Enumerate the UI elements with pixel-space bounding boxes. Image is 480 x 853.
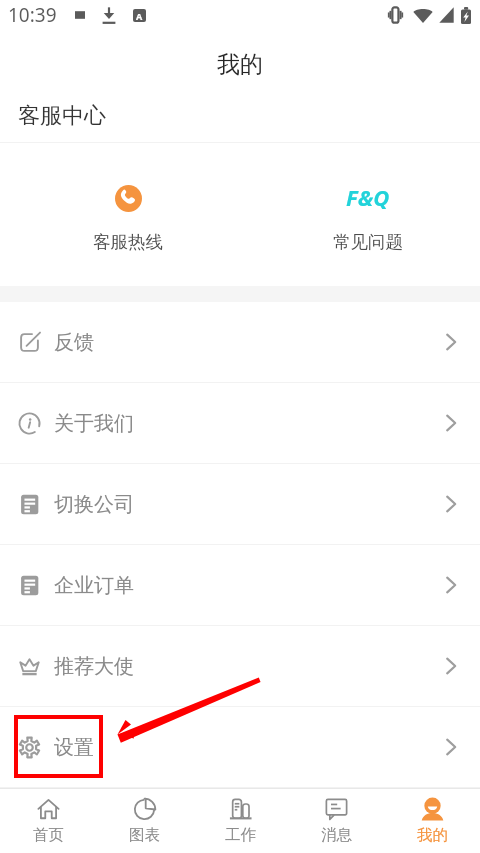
staticText: 关于我们 [54, 411, 134, 436]
staticText: 切换公司 [54, 492, 134, 517]
staticText: 10:39 [8, 2, 57, 28]
button[interactable]: 首页 [0, 789, 96, 853]
staticText: 反馈 [54, 330, 94, 355]
button[interactable]: F&Q [240, 143, 480, 286]
button[interactable]: 设置 [0, 707, 480, 787]
staticText: 推荐大使 [54, 654, 134, 679]
button[interactable]: 客服热线 [0, 143, 240, 286]
staticText: 我的 [417, 825, 448, 845]
staticText: F&Q [346, 182, 390, 209]
button[interactable]: 我的 [384, 789, 480, 853]
staticText: A [136, 10, 143, 22]
button[interactable]: 切换公司 [0, 464, 480, 544]
button[interactable]: 企业订单 [0, 545, 480, 625]
button[interactable]: 消息 [288, 789, 384, 853]
staticText: 客服中心 [18, 102, 106, 130]
button[interactable]: 推荐大使 [0, 626, 480, 706]
button[interactable]: 图表 [96, 789, 192, 853]
staticText: 设置 [54, 735, 94, 760]
staticText: 客服热线 [93, 231, 163, 253]
button[interactable]: 关于我们 [0, 383, 480, 463]
staticText: 工作 [225, 825, 256, 845]
button[interactable]: 工作 [192, 789, 288, 853]
staticText: 图表 [129, 825, 160, 845]
staticText: 消息 [321, 825, 352, 845]
staticText: 常见问题 [333, 231, 403, 253]
staticText: 我的 [217, 50, 263, 79]
button[interactable]: 反馈 [0, 302, 480, 382]
staticText: 首页 [33, 825, 64, 845]
staticText: 企业订单 [54, 573, 134, 598]
